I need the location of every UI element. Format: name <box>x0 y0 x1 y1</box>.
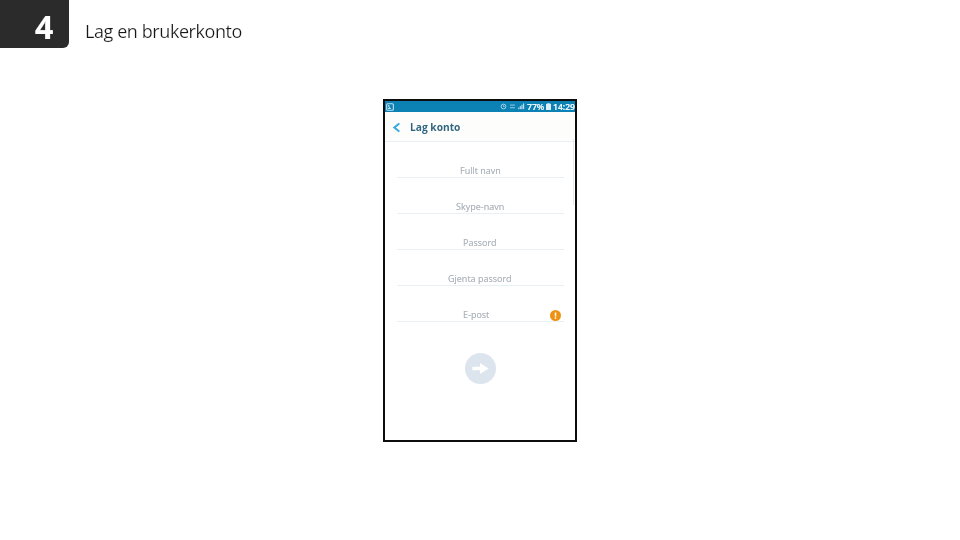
staticText: Fullt navn <box>460 164 501 176</box>
button[interactable]: Neste <box>465 353 496 384</box>
button[interactable]: Tilbake <box>385 112 408 142</box>
button[interactable]: Fullt navn <box>385 142 575 178</box>
staticText: 77% <box>527 101 545 112</box>
button[interactable]: Gjenta passord <box>385 250 575 286</box>
button[interactable]: Advarsel <box>550 310 561 321</box>
staticText: Lag konto <box>410 120 461 134</box>
staticText: 14:29 <box>553 101 576 112</box>
staticText: 4 <box>35 5 54 48</box>
staticText: Gjenta passord <box>448 272 512 284</box>
button[interactable]: Skype-navn <box>385 178 575 214</box>
staticText: Passord <box>463 236 497 248</box>
staticText: Lag en brukerkonto <box>85 19 243 44</box>
button[interactable]: Passord <box>385 214 575 250</box>
button[interactable]: E-post <box>385 286 575 322</box>
staticText: Skype-navn <box>456 200 505 212</box>
staticText: E-post <box>463 308 490 320</box>
button[interactable]: Lysbilde 4 <box>0 0 69 48</box>
